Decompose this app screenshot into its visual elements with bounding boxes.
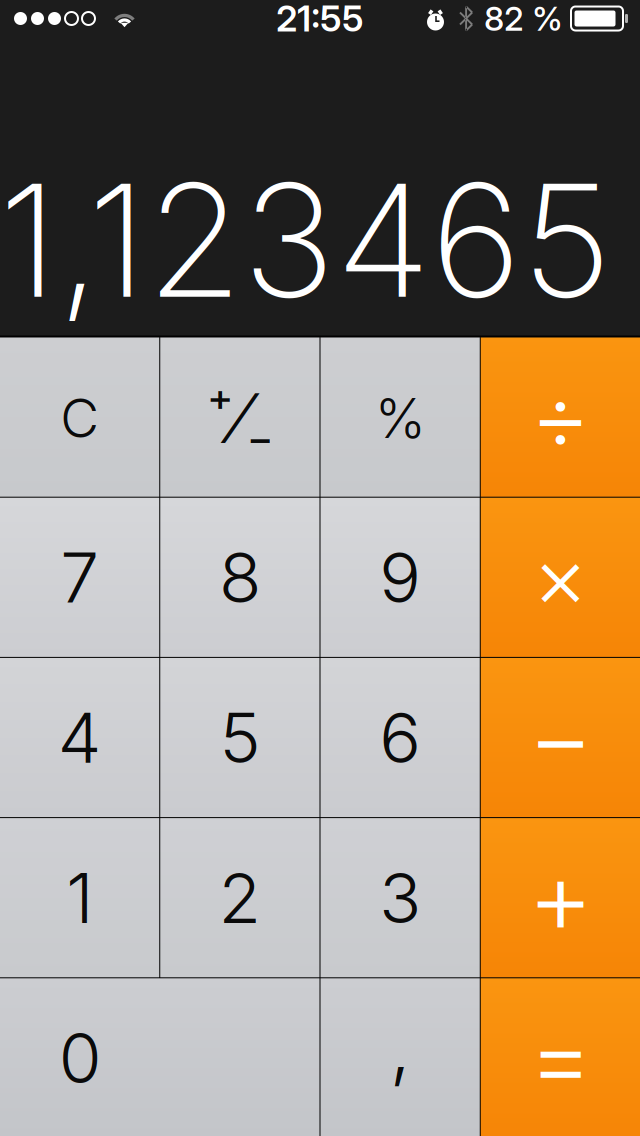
button[interactable]: ⁺⁄₋ bbox=[160, 337, 319, 497]
staticText: 82 % bbox=[484, 0, 563, 39]
staticText: 2 bbox=[218, 856, 261, 940]
button[interactable]: − bbox=[481, 658, 640, 817]
staticText: 7 bbox=[60, 535, 99, 619]
button[interactable]: 5 bbox=[160, 658, 319, 817]
staticText: × bbox=[532, 525, 588, 628]
staticText: ⁺⁄₋ bbox=[206, 376, 274, 460]
staticText: + bbox=[527, 835, 593, 958]
button[interactable]: 3 bbox=[320, 818, 480, 977]
button[interactable]: 9 bbox=[320, 498, 480, 657]
staticText: 5 bbox=[219, 696, 260, 779]
button[interactable]: % bbox=[320, 337, 480, 497]
staticText: ÷ bbox=[530, 360, 591, 472]
staticText: 3 bbox=[379, 856, 421, 940]
button[interactable]: 2 bbox=[160, 818, 319, 977]
button[interactable]: = bbox=[481, 978, 640, 1136]
button[interactable]: × bbox=[481, 498, 640, 657]
staticText: = bbox=[528, 997, 592, 1117]
button[interactable]: 4 bbox=[0, 658, 159, 817]
button[interactable]: , bbox=[320, 978, 480, 1136]
staticText: 8 bbox=[219, 535, 261, 619]
staticText: 21:55 bbox=[276, 0, 364, 40]
staticText: 4 bbox=[58, 696, 102, 779]
staticText: 1 bbox=[66, 856, 93, 940]
button[interactable]: + bbox=[481, 818, 640, 977]
staticText: C bbox=[60, 386, 99, 450]
button[interactable]: 6 bbox=[320, 658, 480, 817]
button[interactable]: 0 bbox=[0, 978, 319, 1136]
staticText: 1,123465 bbox=[0, 146, 611, 334]
button[interactable]: 1 bbox=[0, 818, 159, 977]
button[interactable]: 7 bbox=[0, 498, 159, 657]
button[interactable]: ÷ bbox=[481, 337, 640, 497]
staticText: − bbox=[527, 675, 593, 798]
button[interactable]: 8 bbox=[160, 498, 319, 657]
staticText: 6 bbox=[379, 696, 421, 779]
staticText: % bbox=[375, 385, 426, 451]
staticText: 9 bbox=[379, 535, 421, 619]
button[interactable]: C bbox=[0, 337, 159, 497]
staticText: 0 bbox=[59, 1016, 102, 1100]
staticText: , bbox=[390, 1002, 411, 1092]
